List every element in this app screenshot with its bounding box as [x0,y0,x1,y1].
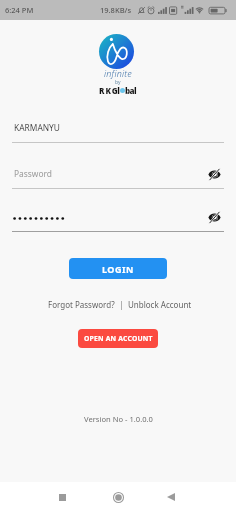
staticText: 19.8KB/s [100,5,132,15]
staticText: Password [14,168,52,179]
staticText: by [115,79,121,86]
button[interactable]: LOGIN [69,258,167,279]
staticText: 6:24 PM [5,5,34,15]
staticText: bal [125,85,137,96]
staticText: OPEN AN ACCOUNT [84,334,153,343]
button[interactable]: Toggle password visibility [206,166,222,182]
staticText: | [115,299,128,310]
button[interactable]: Back [159,485,183,509]
button[interactable]: Forgot Password? [48,299,115,310]
button[interactable]: Home [106,485,130,509]
button[interactable]: Toggle password visibility [206,209,222,225]
staticText: infinite [104,67,133,79]
button[interactable]: Recent apps [50,485,74,509]
staticText: Version No - 1.0.0.0 [84,414,153,424]
staticText: KARMANYU [14,122,61,133]
staticText: LOGIN [102,263,134,275]
button[interactable]: OPEN AN ACCOUNT [78,329,158,348]
staticText: R K Gl [99,85,120,96]
button[interactable]: Unblock Account [128,299,192,310]
